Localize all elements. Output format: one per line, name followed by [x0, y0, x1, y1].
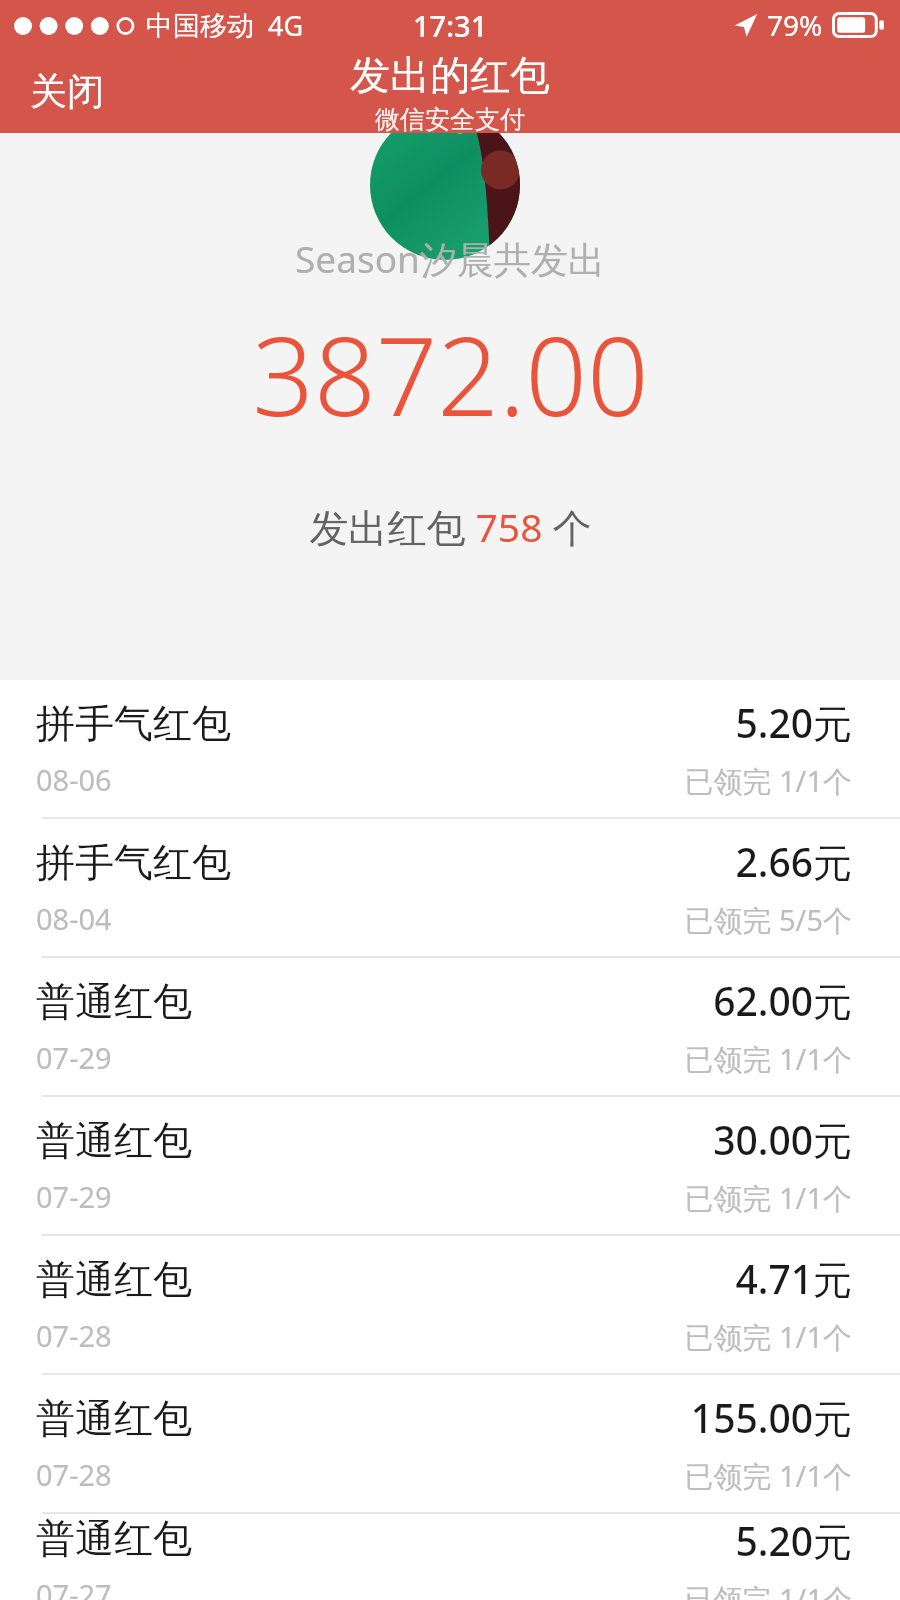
other: Location [732, 12, 758, 38]
staticText: 17:31 [413, 6, 488, 45]
staticText: 已领完 1/1个 [684, 1039, 852, 1079]
staticText: 普通红包 [36, 1255, 192, 1304]
button[interactable]: 普通红包 [0, 958, 900, 1095]
staticText: 已领完 1/1个 [684, 1178, 852, 1218]
staticText: 拼手气红包 [36, 699, 231, 748]
staticText: 5.20元 [735, 1514, 852, 1567]
button[interactable]: 普通红包 [0, 1236, 900, 1373]
staticText: 155.00元 [690, 1391, 852, 1444]
other: Battery 79 percent [832, 12, 884, 38]
button[interactable]: 普通红包 [0, 1514, 900, 1600]
staticText: 07-28 [36, 1455, 112, 1494]
staticText: 发出红包 758 个 [309, 500, 592, 553]
button[interactable]: 关闭 [0, 58, 134, 125]
staticText: 拼手气红包 [36, 838, 231, 887]
staticText: Season汐晨共发出 [295, 233, 605, 284]
button[interactable]: 普通红包 [0, 1097, 900, 1234]
button[interactable]: 拼手气红包 [0, 819, 900, 956]
button[interactable]: 拼手气红包 [0, 680, 900, 817]
staticText: 07-29 [36, 1038, 112, 1077]
staticText: 已领完 5/5个 [684, 900, 852, 940]
button[interactable]: 普通红包 [0, 1375, 900, 1512]
staticText: 普通红包 [36, 1116, 192, 1165]
staticText: 07-29 [36, 1177, 112, 1216]
staticText: 已领完 1/1个 [684, 1317, 852, 1357]
staticText: 08-06 [36, 760, 112, 799]
staticText: 已领完 1/1个 [684, 761, 852, 801]
staticText: 4G [268, 7, 304, 44]
staticText: 5.20元 [735, 696, 852, 749]
staticText: 已领完 1/1个 [684, 1456, 852, 1496]
staticText: 已领完 1/1个 [684, 1579, 852, 1600]
staticText: 发出的红包 [350, 50, 550, 100]
staticText: 普通红包 [36, 1394, 192, 1443]
staticText: 79% [767, 6, 823, 44]
staticText: 4.71元 [735, 1252, 852, 1305]
staticText: 08-04 [36, 899, 112, 938]
staticText: 中国移动 [146, 9, 254, 43]
staticText: 07-27 [36, 1575, 112, 1600]
staticText: 2.66元 [735, 835, 852, 888]
staticText: 3872.00 [252, 301, 649, 448]
staticText: 30.00元 [713, 1113, 852, 1166]
staticText: 微信安全支付 [375, 104, 525, 133]
staticText: 普通红包 [36, 1514, 192, 1563]
staticText: 62.00元 [713, 974, 852, 1027]
staticText: 07-28 [36, 1316, 112, 1355]
staticText: 关闭 [30, 68, 104, 115]
staticText: 普通红包 [36, 977, 192, 1026]
